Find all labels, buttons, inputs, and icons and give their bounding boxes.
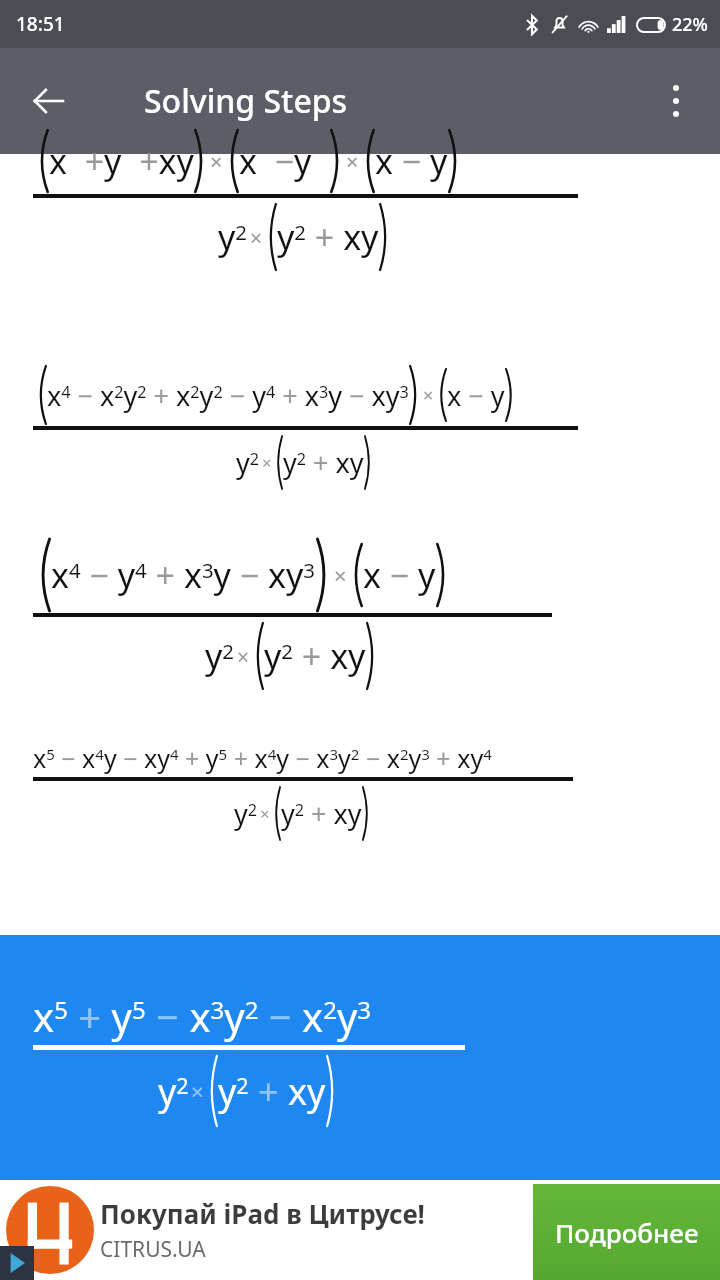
staticText: x − y (363, 552, 436, 598)
staticText: Solving Steps (144, 79, 348, 123)
staticText: x − y (447, 377, 505, 414)
button[interactable]: x5 − x4y − xy4 + y5 + x4y − x3y2 − x2y3 … (0, 741, 720, 840)
staticText: y2 (205, 633, 235, 679)
staticText: y2 + xy (281, 795, 362, 832)
staticText: 18:51 (16, 11, 65, 37)
staticText: y2 (218, 214, 248, 260)
button[interactable]: x4 − y4 + x3y − xy3 (0, 539, 720, 689)
staticText: y2 + xy (277, 214, 379, 260)
staticText: × (191, 1076, 204, 1106)
staticText: y2 + xy (283, 444, 364, 481)
button[interactable]: Подробнее (533, 1184, 720, 1280)
staticText: × (346, 146, 359, 176)
staticText: 22% (672, 12, 708, 37)
button[interactable]: Back (12, 65, 84, 137)
staticText: × (210, 146, 223, 176)
staticText: x −y (239, 138, 330, 184)
button[interactable]: x +y +xy (0, 154, 720, 314)
staticText: × (237, 642, 250, 671)
staticText: x − y (375, 138, 448, 184)
staticText: x5 − x4y − xy4 + y5 + x4y − x3y2 − x2y3 … (33, 741, 492, 775)
button[interactable]: More options (640, 65, 712, 137)
staticText: × (262, 451, 272, 474)
staticText: y2 (158, 1067, 189, 1116)
staticText: x4 − y4 + x3y − xy3 (51, 552, 316, 598)
staticText: × (334, 560, 347, 590)
button[interactable]: Покупай iPad в Цитрусе! (0, 1180, 720, 1280)
staticText: Покупай iPad в Цитрусе! (100, 1196, 425, 1231)
staticText: x5 + y5 − x3y2 − x2y3 (33, 989, 372, 1043)
staticText: y2 + xy (264, 633, 366, 679)
staticText: y2 + xy (218, 1067, 326, 1116)
staticText: x4 − x2y2 + x2y2 − y4 + x3y − xy3 (47, 377, 409, 414)
button[interactable]: x5 + y5 − x3y2 − x2y3 (0, 935, 720, 1180)
staticText: Подробнее (555, 1215, 699, 1250)
staticText: y2 (234, 795, 258, 832)
staticText: x +y +xy (49, 138, 194, 184)
staticText: × (423, 383, 434, 408)
staticText: CITRUS.UA (100, 1235, 206, 1264)
staticText: y2 (236, 444, 260, 481)
button[interactable]: x4 − x2y2 + x2y2 − y4 + x3y − xy3 (0, 366, 720, 489)
staticText: × (250, 223, 263, 252)
staticText: × (260, 802, 270, 825)
